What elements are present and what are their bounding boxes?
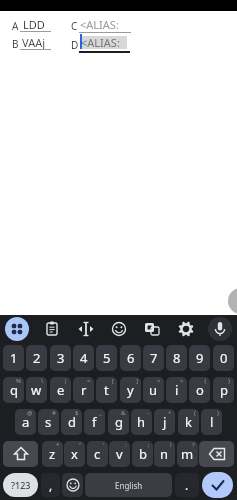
button[interactable] <box>62 473 83 497</box>
button[interactable]: x <box>64 441 85 467</box>
staticText: f <box>92 413 97 431</box>
staticText: i <box>175 381 179 399</box>
staticText: ( <box>194 409 196 417</box>
button[interactable]: o <box>189 377 210 403</box>
staticText: 9 <box>196 349 204 367</box>
staticText: b <box>139 445 147 463</box>
button[interactable]: q <box>3 377 24 403</box>
staticText: 5 <box>103 349 111 367</box>
staticText: 0 <box>220 349 228 367</box>
button[interactable]: 1 <box>3 345 24 371</box>
staticText: + <box>168 409 172 417</box>
button[interactable]: 6 <box>120 345 141 371</box>
staticText: _ <box>99 409 102 417</box>
button[interactable]: English <box>85 473 172 497</box>
staticText: ! <box>170 441 172 449</box>
staticText: <ALIAS: <box>80 17 119 32</box>
button[interactable]: v <box>109 441 130 467</box>
staticText: m <box>181 445 194 463</box>
staticText: 7 <box>150 349 158 367</box>
button[interactable]: 9 <box>189 345 210 371</box>
staticText: c <box>94 445 101 463</box>
button[interactable]: 5 <box>96 345 117 371</box>
staticText: , <box>49 477 53 493</box>
staticText: 3 <box>57 349 65 367</box>
button[interactable]: 8 <box>166 345 187 371</box>
staticText: 8 <box>173 349 181 367</box>
staticText: } <box>228 377 231 385</box>
button[interactable]: z <box>42 441 63 467</box>
staticText: x <box>71 445 78 463</box>
staticText: q <box>10 381 18 399</box>
button[interactable]: s <box>38 409 59 435</box>
button[interactable]: ?123 <box>3 473 38 497</box>
button[interactable]: j <box>154 409 175 435</box>
button[interactable]: , <box>41 473 60 497</box>
staticText: % <box>16 377 21 385</box>
button[interactable]: g <box>108 409 129 435</box>
button[interactable]: e <box>50 377 71 403</box>
button[interactable]: a <box>15 409 36 435</box>
staticText: { <box>204 377 207 385</box>
staticText: p <box>220 381 228 399</box>
button[interactable]: . <box>175 473 199 497</box>
staticText: r <box>81 381 87 399</box>
button[interactable]: r <box>73 377 94 403</box>
button[interactable]: n <box>154 441 175 467</box>
staticText: A <box>12 19 19 33</box>
staticText: D <box>71 38 79 52</box>
button[interactable]: 7 <box>143 345 164 371</box>
button[interactable]: p <box>213 377 234 403</box>
staticText: ) <box>217 409 219 417</box>
staticText: \ <box>41 377 44 385</box>
staticText: $ <box>75 409 79 417</box>
staticText: - <box>147 409 149 417</box>
staticText: ? <box>192 441 195 449</box>
staticText: : <box>125 441 127 449</box>
staticText: d <box>68 413 76 431</box>
staticText: > <box>180 377 184 385</box>
button[interactable] <box>199 441 234 467</box>
staticText: # <box>52 409 56 417</box>
staticText: . <box>185 477 189 493</box>
button[interactable]: d <box>61 409 82 435</box>
staticText: & <box>121 409 126 417</box>
button[interactable]: 4 <box>73 345 94 371</box>
staticText: n <box>160 445 169 463</box>
staticText: v <box>116 445 123 463</box>
button[interactable] <box>3 441 38 467</box>
staticText: z <box>49 445 56 463</box>
staticText: j <box>163 413 167 431</box>
staticText: = <box>87 377 91 385</box>
staticText: w <box>31 381 42 399</box>
staticText: s <box>45 413 52 431</box>
button[interactable]: 3 <box>50 345 71 371</box>
button[interactable]: k <box>178 409 199 435</box>
button[interactable]: y <box>120 377 141 403</box>
button[interactable]: l <box>201 409 222 435</box>
staticText: 4 <box>80 349 88 367</box>
staticText: l <box>210 413 214 431</box>
staticText: 1 <box>10 349 18 367</box>
staticText: 6 <box>127 349 135 367</box>
staticText: LDD <box>23 17 45 32</box>
button[interactable]: f <box>84 409 105 435</box>
button[interactable]: w <box>26 377 47 403</box>
staticText: k <box>185 413 192 431</box>
button[interactable]: 0 <box>213 345 234 371</box>
staticText: ' <box>103 441 105 449</box>
button[interactable]: m <box>177 441 198 467</box>
button[interactable]: u <box>143 377 164 403</box>
button[interactable]: h <box>131 409 152 435</box>
button[interactable]: t <box>96 377 117 403</box>
staticText: B <box>12 37 19 51</box>
button[interactable]: 2 <box>26 345 47 371</box>
staticText: " <box>79 441 82 449</box>
staticText: ] <box>136 377 138 385</box>
button[interactable] <box>202 472 233 498</box>
staticText: e <box>57 381 65 399</box>
button[interactable]: b <box>132 441 153 467</box>
staticText: ; <box>148 441 150 449</box>
button[interactable]: c <box>87 441 108 467</box>
button[interactable]: i <box>166 377 187 403</box>
